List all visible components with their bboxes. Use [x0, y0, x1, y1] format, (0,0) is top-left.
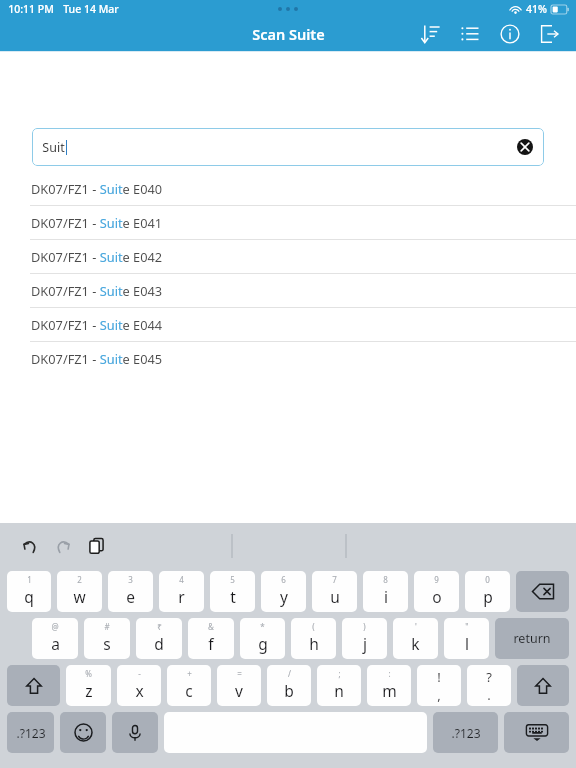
button[interactable]: !: [417, 665, 461, 706]
staticText: 0: [485, 574, 490, 585]
button[interactable]: Hide keyboard: [504, 712, 569, 753]
button[interactable]: @: [32, 618, 78, 659]
staticText: ?: [486, 668, 492, 686]
staticText: DK07/FZ1 - Suite E043: [31, 282, 163, 299]
staticText: d: [154, 633, 164, 654]
staticText: +: [187, 668, 192, 679]
button[interactable]: :: [367, 665, 411, 706]
staticText: q: [24, 586, 34, 607]
button[interactable]: ': [393, 618, 438, 659]
staticText: ;: [338, 668, 341, 679]
button[interactable]: ": [444, 618, 489, 659]
button[interactable]: DK07/FZ1 - Suite E040: [0, 172, 576, 205]
staticText: 5: [230, 574, 235, 585]
button[interactable]: Suit: [32, 128, 544, 166]
button[interactable]: Backspace: [516, 571, 569, 612]
button[interactable]: 4: [159, 571, 204, 612]
button[interactable]: -: [117, 665, 161, 706]
button[interactable]: Clear text: [514, 136, 536, 158]
staticText: 1: [27, 574, 32, 585]
button[interactable]: List: [456, 20, 484, 48]
button[interactable]: Shift: [517, 665, 569, 706]
button[interactable]: Dictation: [112, 712, 158, 753]
button[interactable]: Undo: [14, 531, 44, 561]
staticText: Suit: [42, 139, 65, 156]
button[interactable]: .?123: [433, 712, 498, 753]
button[interactable]: Log out: [536, 20, 564, 48]
staticText: ): [363, 621, 366, 632]
button[interactable]: 1: [7, 571, 51, 612]
staticText: 8: [383, 574, 388, 585]
button[interactable]: 8: [363, 571, 408, 612]
staticText: *: [260, 621, 265, 632]
button[interactable]: DK07/FZ1 - Suite E042: [0, 240, 576, 273]
staticText: j: [363, 633, 367, 654]
staticText: .?123: [16, 725, 46, 741]
staticText: k: [411, 633, 420, 654]
staticText: 9: [434, 574, 439, 585]
button[interactable]: 2: [57, 571, 102, 612]
staticText: DK07/FZ1 - Suite E044: [31, 316, 163, 333]
button[interactable]: Emoji: [60, 712, 106, 753]
button[interactable]: DK07/FZ1 - Suite E044: [0, 308, 576, 341]
button[interactable]: *: [240, 618, 285, 659]
staticText: x: [135, 680, 144, 701]
staticText: Tue 14 Mar: [63, 2, 119, 16]
button[interactable]: DK07/FZ1 - Suite E043: [0, 274, 576, 307]
staticText: o: [432, 586, 442, 607]
button[interactable]: ₹: [136, 618, 182, 659]
button[interactable]: #: [84, 618, 130, 659]
button[interactable]: /: [267, 665, 311, 706]
button[interactable]: return: [495, 618, 569, 659]
staticText: .: [487, 686, 491, 704]
staticText: 2: [77, 574, 82, 585]
staticText: @: [51, 621, 59, 632]
button[interactable]: 9: [414, 571, 459, 612]
staticText: return: [513, 630, 551, 647]
button[interactable]: DK07/FZ1 - Suite E041: [0, 206, 576, 239]
staticText: v: [235, 680, 243, 701]
staticText: 7: [332, 574, 337, 585]
staticText: .?123: [451, 725, 481, 741]
staticText: 10:11 PM: [8, 2, 54, 16]
button[interactable]: ?: [467, 665, 511, 706]
button[interactable]: Info: [496, 20, 524, 48]
staticText: :: [388, 668, 391, 679]
button[interactable]: .?123: [7, 712, 54, 753]
button[interactable]: &: [188, 618, 234, 659]
button[interactable]: ;: [317, 665, 361, 706]
staticText: f: [208, 633, 214, 654]
staticText: i: [384, 586, 388, 607]
button[interactable]: Shift: [7, 665, 60, 706]
staticText: (: [312, 621, 315, 632]
button[interactable]: (: [291, 618, 336, 659]
button[interactable]: +: [167, 665, 211, 706]
staticText: =: [237, 668, 242, 679]
staticText: DK07/FZ1 - Suite E042: [31, 248, 163, 265]
button[interactable]: ): [342, 618, 387, 659]
staticText: #: [104, 621, 110, 632]
staticText: DK07/FZ1 - Suite E045: [31, 350, 163, 367]
staticText: r: [178, 586, 185, 607]
button[interactable]: Paste: [82, 531, 112, 561]
staticText: 41%: [526, 2, 547, 16]
button[interactable]: 5: [210, 571, 255, 612]
staticText: l: [465, 633, 469, 654]
button[interactable]: Sort: [416, 20, 444, 48]
button[interactable]: 3: [108, 571, 153, 612]
button[interactable]: 7: [312, 571, 357, 612]
button[interactable]: %: [66, 665, 111, 706]
button[interactable]: Redo: [48, 531, 78, 561]
staticText: e: [126, 586, 135, 607]
staticText: w: [73, 586, 86, 607]
staticText: ₹: [157, 621, 162, 632]
staticText: -: [138, 668, 141, 679]
button[interactable]: =: [217, 665, 261, 706]
staticText: y: [280, 586, 288, 607]
button[interactable]: 6: [261, 571, 306, 612]
staticText: /: [288, 668, 291, 679]
button[interactable]: DK07/FZ1 - Suite E045: [0, 342, 576, 375]
button[interactable]: 0: [465, 571, 510, 612]
staticText: c: [185, 680, 193, 701]
